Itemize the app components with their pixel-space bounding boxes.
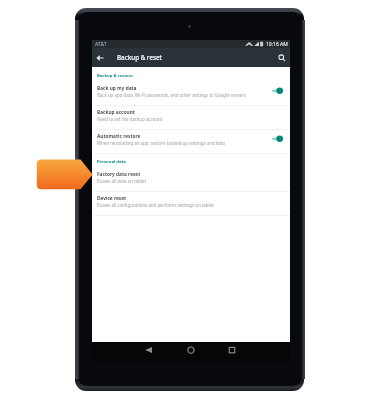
staticText: AT&T: [95, 41, 107, 48]
button[interactable]: Back: [142, 342, 156, 358]
button[interactable]: Back up my data: [92, 81, 290, 105]
staticText: Automatic restore: [97, 133, 141, 140]
staticText: Need to set the backup account: [97, 116, 163, 122]
button[interactable]: Home: [184, 342, 198, 358]
staticText: When reinstalling an app, restore backed…: [97, 140, 225, 146]
staticText: Erases all configurations and performs s…: [97, 202, 214, 208]
button[interactable]: Automatic restore: [92, 129, 290, 153]
button[interactable]: Recent apps: [225, 342, 239, 358]
staticText: Erases all data on tablet: [97, 178, 147, 184]
staticText: 10:16 AM: [266, 41, 288, 48]
button[interactable]: Factory data reset: [92, 167, 290, 191]
staticText: Backup account: [97, 109, 135, 116]
staticText: Back up my data: [97, 85, 137, 92]
button[interactable]: Back: [94, 52, 106, 64]
button[interactable]: Backup account: [92, 105, 290, 129]
staticText: Backup & restore: [97, 73, 133, 79]
button[interactable]: Search: [276, 52, 288, 64]
staticText: Backup & reset: [117, 53, 162, 62]
button[interactable]: Device reset: [92, 191, 290, 215]
staticText: Personal data: [97, 159, 126, 165]
staticText: Factory data reset: [97, 171, 141, 178]
staticText: Device reset: [97, 195, 127, 202]
staticText: Back up app data, Wi-Fi passwords, and o…: [97, 92, 246, 98]
